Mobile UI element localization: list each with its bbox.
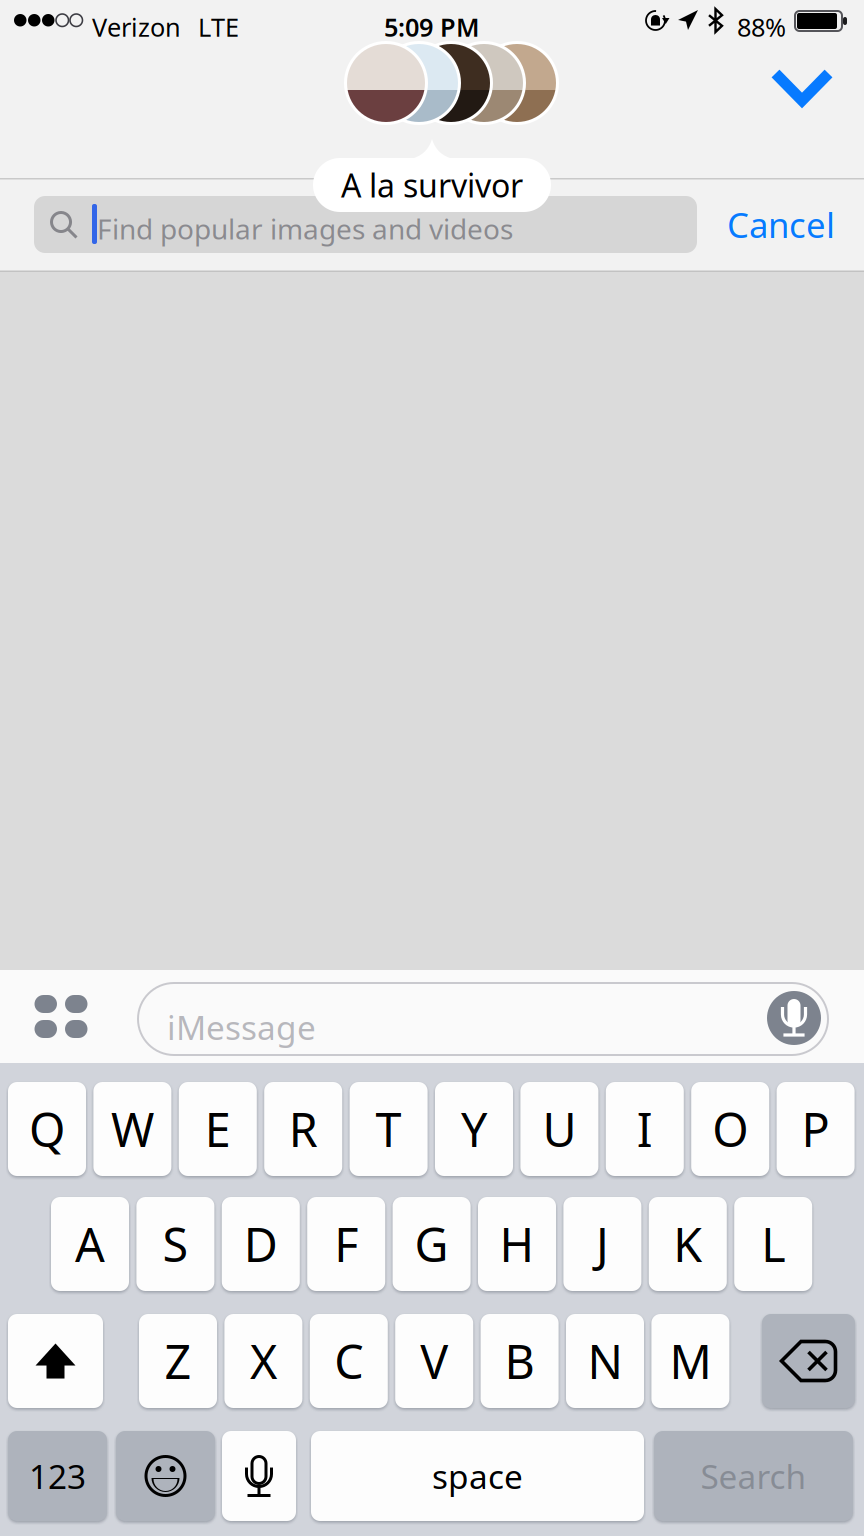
staticText: W <box>111 1098 154 1160</box>
button[interactable]: K <box>649 1197 727 1291</box>
staticText: 88% <box>737 10 786 44</box>
staticText: N <box>587 1330 622 1392</box>
button[interactable]: W <box>93 1082 171 1176</box>
staticText: V <box>420 1330 448 1392</box>
staticText: U <box>542 1098 576 1160</box>
button[interactable]: T <box>350 1082 428 1176</box>
staticText: O <box>712 1098 748 1160</box>
button[interactable]: Q <box>8 1082 86 1176</box>
staticText: B <box>505 1330 535 1392</box>
staticText: M <box>669 1330 711 1392</box>
staticText: E <box>205 1098 231 1160</box>
button[interactable]: G <box>393 1197 471 1291</box>
button[interactable]: L <box>734 1197 812 1291</box>
staticText: L <box>761 1213 785 1275</box>
staticText: K <box>673 1213 702 1275</box>
staticText: R <box>289 1098 318 1160</box>
button[interactable]: A <box>51 1197 129 1291</box>
button[interactable]: Z <box>139 1314 217 1408</box>
staticText: C <box>334 1330 363 1392</box>
button[interactable]: R <box>264 1082 342 1176</box>
staticText: Find popular images and videos <box>97 210 513 247</box>
staticText: I <box>637 1098 653 1160</box>
staticText: P <box>802 1098 830 1160</box>
button[interactable]: Delete <box>762 1314 855 1408</box>
button[interactable]: S <box>136 1197 214 1291</box>
staticText: Search <box>700 1454 806 1498</box>
button[interactable]: F <box>307 1197 385 1291</box>
button[interactable]: N <box>566 1314 644 1408</box>
button[interactable]: O <box>691 1082 769 1176</box>
button[interactable]: P <box>777 1082 855 1176</box>
staticText: Verizon <box>92 10 181 44</box>
staticText: X <box>250 1330 277 1392</box>
button[interactable]: D <box>222 1197 300 1291</box>
button[interactable]: I <box>606 1082 684 1176</box>
staticText: A la survivor <box>341 164 523 206</box>
staticText: space <box>432 1454 523 1498</box>
staticText: S <box>162 1213 188 1275</box>
staticText: Cancel <box>727 201 835 247</box>
button[interactable]: Collapse <box>754 39 850 135</box>
button[interactable]: Search <box>654 1431 853 1521</box>
button[interactable]: Apps <box>6 970 116 1063</box>
staticText: Z <box>164 1330 191 1392</box>
staticText: A <box>75 1213 105 1275</box>
staticText: D <box>244 1213 278 1275</box>
button[interactable]: Y <box>435 1082 513 1176</box>
staticText: iMessage <box>167 1005 316 1049</box>
staticText: T <box>376 1098 402 1160</box>
button[interactable]: Cancel <box>714 196 848 253</box>
button[interactable]: C <box>310 1314 388 1408</box>
staticText: J <box>596 1213 609 1275</box>
button[interactable]: H <box>478 1197 556 1291</box>
button[interactable]: Emoji <box>116 1431 215 1521</box>
button[interactable]: M <box>651 1314 729 1408</box>
button[interactable]: space <box>311 1431 644 1521</box>
button[interactable]: X <box>224 1314 302 1408</box>
button[interactable]: iMessage <box>138 983 828 1055</box>
button[interactable]: Dictation <box>222 1431 296 1521</box>
button[interactable]: 123 <box>8 1431 107 1521</box>
staticText: LTE <box>198 10 239 44</box>
staticText: Y <box>461 1098 487 1160</box>
button[interactable]: V <box>395 1314 473 1408</box>
staticText: H <box>499 1213 534 1275</box>
staticText: 5:09 PM <box>384 10 480 44</box>
button[interactable]: E <box>179 1082 257 1176</box>
staticText: F <box>334 1213 358 1275</box>
staticText: 123 <box>29 1454 86 1498</box>
staticText: Q <box>29 1098 65 1160</box>
button[interactable]: J <box>563 1197 641 1291</box>
button[interactable]: B <box>481 1314 559 1408</box>
button[interactable]: Shift <box>8 1314 103 1408</box>
staticText: G <box>415 1213 449 1275</box>
button[interactable]: U <box>520 1082 598 1176</box>
